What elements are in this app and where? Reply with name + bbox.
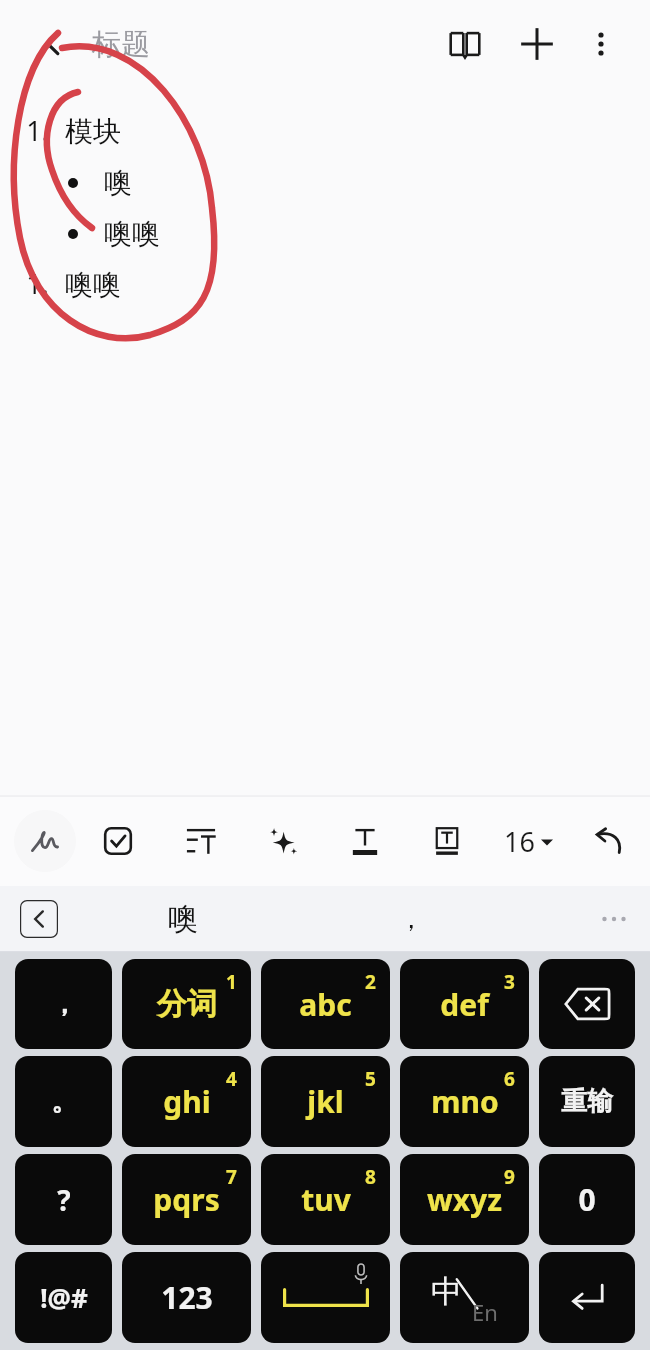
staticText: 中 [431,1272,462,1311]
button[interactable]: jkl [261,1056,390,1147]
staticText: 123 [161,1277,213,1318]
button[interactable]: mno [400,1056,529,1147]
button[interactable]: ， [15,959,112,1049]
button[interactable]: def [400,959,529,1049]
staticText: 分词 [157,985,217,1023]
staticText: def [440,984,489,1025]
staticText: 2 [365,969,376,995]
staticText: 5 [365,1066,376,1092]
staticText: 重输 [561,1085,613,1118]
staticText: 7 [226,1164,237,1190]
staticText: 4 [226,1066,237,1092]
staticText: jkl [307,1081,344,1122]
staticText: 噢噢 [65,267,121,302]
button[interactable]: Handwriting [14,810,76,872]
staticText: 模块 [65,114,121,149]
button[interactable]: Reading view [434,13,496,75]
staticText: !@# [40,1280,88,1315]
button[interactable]: !@# [15,1252,112,1343]
button[interactable]: Text format [324,796,406,886]
staticText: 。 [51,1085,77,1118]
staticText: 9 [504,1164,515,1190]
staticText: ， [51,988,77,1021]
button[interactable]: Add [506,13,568,75]
button[interactable]: Backspace [539,959,635,1049]
staticText: ? [57,1181,71,1219]
button[interactable]: 分词 [122,959,251,1049]
staticText: pqrs [153,1179,220,1220]
button[interactable]: Space [261,1252,390,1343]
staticText: 0 [578,1179,596,1220]
button[interactable]: Paragraph style [159,796,242,886]
button[interactable]: Back [26,17,80,71]
button[interactable]: Previous [20,900,58,938]
button[interactable]: ghi [122,1056,251,1147]
staticText: 3 [504,969,515,995]
button[interactable]: tuv [261,1154,390,1245]
button[interactable]: 噢 [168,900,198,938]
staticText: 噢 [104,165,132,200]
button[interactable]: wxyz [400,1154,529,1245]
button[interactable]: Checklist [76,796,159,886]
button[interactable]: More options [574,17,628,71]
button[interactable]: AI assist [242,796,324,886]
button[interactable]: 16 [488,796,568,886]
button[interactable]: 0 [539,1154,635,1245]
button[interactable]: 123 [122,1252,251,1343]
button[interactable]: Text box [406,796,488,886]
staticText: tuv [301,1179,351,1220]
button[interactable]: ， [398,903,424,936]
staticText: 16 [504,823,535,860]
button[interactable]: More candidates [592,897,636,941]
staticText: En [472,1297,498,1327]
staticText: 1. [26,265,49,302]
staticText: abc [299,984,352,1025]
staticText: wxyz [427,1179,502,1220]
staticText: 噢 [168,900,198,938]
button[interactable]: 。 [15,1056,112,1147]
staticText: 1. [26,112,49,149]
button[interactable]: ? [15,1154,112,1245]
button[interactable]: Enter [539,1252,635,1343]
button[interactable]: abc [261,959,390,1049]
staticText: 8 [365,1164,376,1190]
button[interactable]: Switch language [400,1252,529,1343]
staticText: ， [398,903,424,936]
staticText: mno [431,1081,499,1122]
staticText: 标题 [92,26,150,63]
staticText: ghi [163,1081,211,1122]
staticText: 1 [226,969,237,995]
button[interactable]: pqrs [122,1154,251,1245]
button[interactable]: 重输 [539,1056,635,1147]
staticText: 噢噢 [104,216,160,251]
staticText: 6 [504,1066,515,1092]
button[interactable]: Undo [568,796,650,886]
